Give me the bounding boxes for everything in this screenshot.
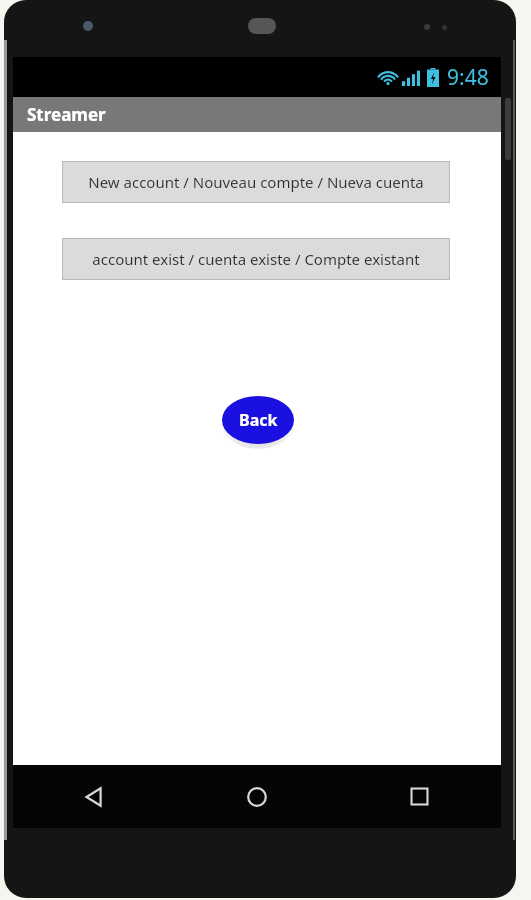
staticText: New account / Nouveau compte / Nueva cue… xyxy=(88,172,424,192)
button[interactable]: Recent apps xyxy=(338,765,501,828)
button[interactable]: New account / Nouveau compte / Nueva cue… xyxy=(62,161,450,203)
button[interactable]: account exist / cuenta existe / Compte e… xyxy=(62,238,450,280)
staticText: Back xyxy=(239,409,278,431)
button[interactable]: Back xyxy=(13,765,175,828)
button[interactable]: Home xyxy=(175,765,338,828)
button[interactable]: Back xyxy=(222,396,294,444)
staticText: account exist / cuenta existe / Compte e… xyxy=(92,249,420,269)
staticText: 9:48 xyxy=(447,63,489,92)
staticText: Streamer xyxy=(27,103,106,126)
